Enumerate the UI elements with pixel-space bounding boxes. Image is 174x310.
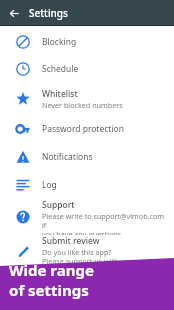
staticText: Wide range: [9, 260, 94, 280]
staticText: Password protection: [42, 123, 124, 135]
staticText: Settings: [29, 6, 68, 20]
button[interactable]: Notifications: [0, 143, 174, 171]
staticText: Whitelist: [42, 88, 78, 100]
button[interactable]: Log: [0, 171, 174, 199]
button[interactable]: Support: [0, 199, 174, 235]
button[interactable]: Submit review: [0, 235, 174, 271]
button[interactable]: Password protection: [0, 114, 174, 143]
staticText: Submit review: [42, 235, 100, 247]
staticText: Do you like this app? Please support us …: [42, 247, 168, 271]
staticText: Never blocked numbers: [42, 100, 123, 110]
button[interactable]: Blocking: [0, 28, 174, 55]
staticText: Schedule: [42, 63, 79, 75]
staticText: of settings: [9, 280, 89, 300]
staticText: Notifications: [42, 151, 93, 163]
staticText: Blocking: [42, 36, 77, 48]
staticText: Please write to support@vlmob.com if you…: [42, 211, 168, 235]
button[interactable]: Schedule: [0, 55, 174, 83]
button[interactable]: Back: [6, 5, 22, 21]
staticText: Log: [42, 179, 57, 191]
staticText: Support: [42, 199, 75, 211]
button[interactable]: Whitelist: [0, 83, 174, 114]
